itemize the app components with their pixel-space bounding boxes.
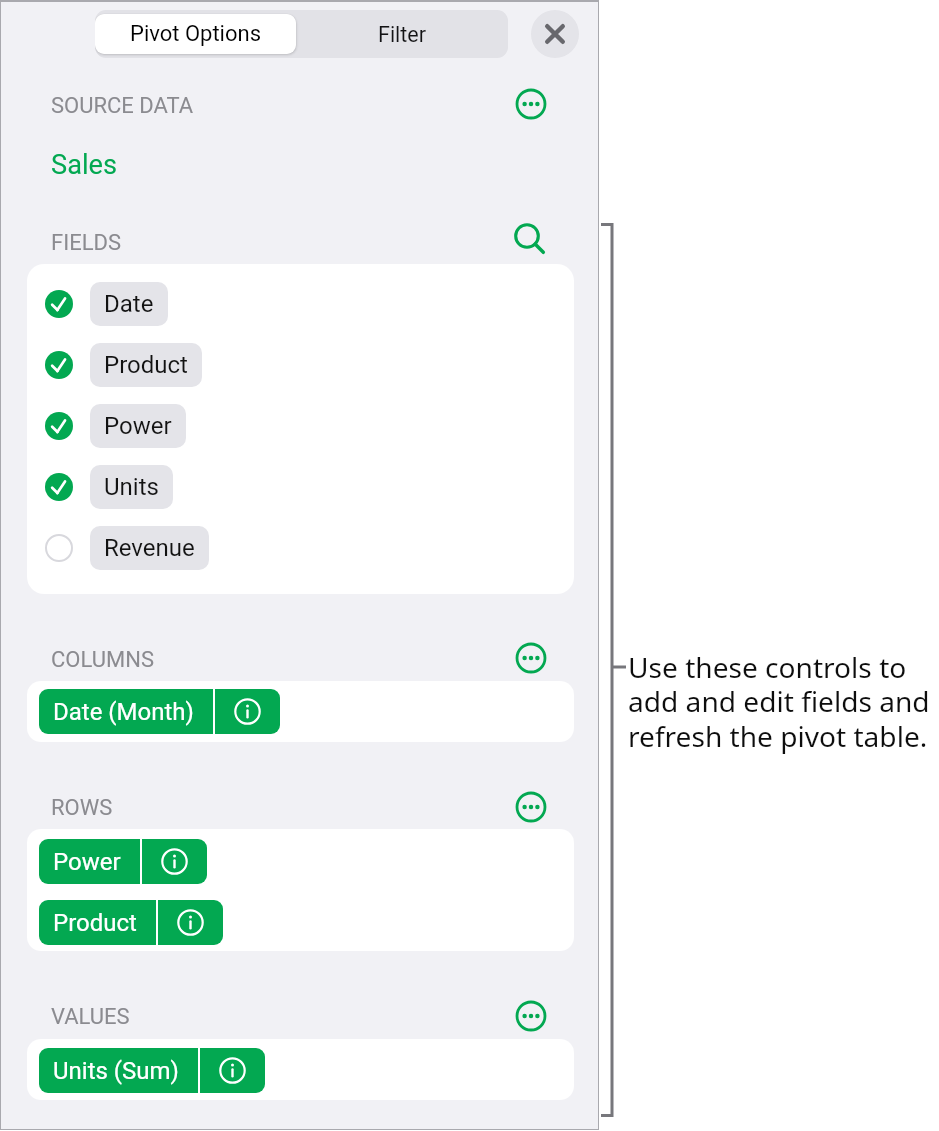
button[interactable]: More options bbox=[509, 636, 553, 680]
button[interactable]: More options bbox=[509, 785, 553, 829]
staticText: FIELDS bbox=[51, 230, 121, 256]
staticText: Units bbox=[104, 473, 159, 501]
staticText: Units (Sum) bbox=[53, 1057, 179, 1085]
staticText: Pivot Options bbox=[130, 21, 262, 47]
button[interactable]: Close bbox=[531, 10, 579, 58]
button[interactable]: Filter bbox=[296, 10, 508, 58]
staticText: Date bbox=[104, 290, 154, 318]
staticText: Filter bbox=[378, 22, 427, 47]
button[interactable]: Product bbox=[27, 334, 574, 395]
button[interactable]: Pivot Options bbox=[95, 14, 296, 54]
button[interactable]: Units (Sum) bbox=[39, 1048, 265, 1093]
button[interactable]: Product bbox=[39, 900, 223, 945]
staticText: Sales bbox=[51, 149, 117, 181]
staticText: Product bbox=[104, 351, 188, 379]
button[interactable]: Revenue bbox=[27, 517, 574, 578]
staticText: Date (Month) bbox=[53, 698, 194, 726]
staticText: COLUMNS bbox=[51, 647, 154, 673]
button[interactable]: Date (Month) bbox=[39, 689, 280, 734]
staticText: ROWS bbox=[51, 795, 113, 821]
staticText: Use these controls to add and edit field… bbox=[628, 648, 939, 755]
staticText: Power bbox=[53, 848, 121, 876]
button[interactable]: More options bbox=[509, 82, 553, 126]
button[interactable]: Power bbox=[39, 839, 207, 884]
staticText: Revenue bbox=[104, 534, 195, 562]
staticText: SOURCE DATA bbox=[51, 93, 194, 119]
button[interactable]: Search bbox=[507, 216, 551, 260]
staticText: VALUES bbox=[51, 1004, 130, 1030]
button[interactable]: More options bbox=[509, 994, 553, 1038]
staticText: Power bbox=[104, 412, 172, 440]
button[interactable]: Power bbox=[27, 395, 574, 456]
staticText: Product bbox=[53, 909, 137, 937]
button[interactable]: Date bbox=[27, 273, 574, 334]
button[interactable]: Units bbox=[27, 456, 574, 517]
